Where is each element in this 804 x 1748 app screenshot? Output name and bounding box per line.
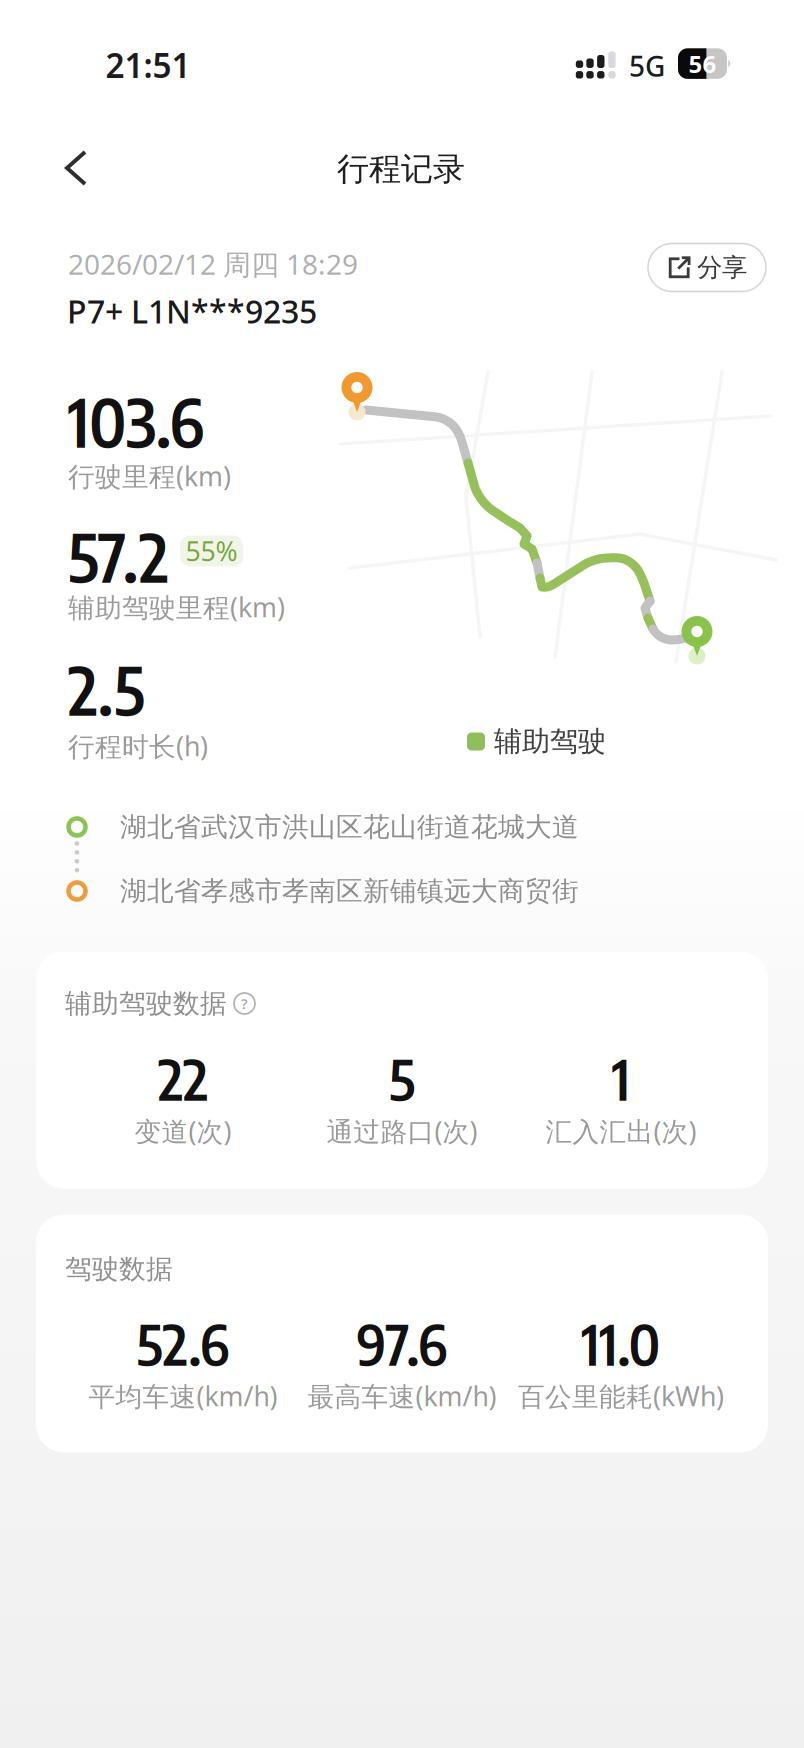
staticText: 行程记录: [337, 149, 465, 189]
staticText: 最高车速(km/h): [307, 1378, 496, 1414]
staticText: 行程时长(h): [68, 728, 208, 764]
staticText: ?: [241, 994, 248, 1013]
staticText: P7+ L1N***9235: [67, 290, 317, 332]
staticText: 57.2: [68, 515, 169, 597]
staticText: 5: [389, 1043, 415, 1113]
staticText: 2026/02/12 周四 18:29: [68, 245, 358, 283]
staticText: 55%: [185, 533, 237, 569]
staticText: 97.6: [356, 1308, 447, 1378]
staticText: 辅助驾驶里程(km): [68, 589, 285, 625]
staticText: 辅助驾驶: [494, 724, 606, 759]
staticText: 湖北省孝感市孝南区新铺镇远大商贸街: [120, 875, 579, 907]
staticText: 22: [158, 1043, 208, 1113]
button[interactable]: 返回: [13, 140, 114, 196]
staticText: 52.6: [136, 1308, 229, 1378]
staticText: 平均车速(km/h): [88, 1378, 277, 1414]
staticText: 百公里能耗(kWh): [518, 1378, 724, 1414]
staticText: 56: [688, 48, 716, 80]
staticText: 辅助驾驶数据: [65, 987, 227, 1020]
staticText: 通过路口(次): [326, 1113, 477, 1149]
button[interactable]: 分享: [648, 243, 766, 291]
staticText: 湖北省武汉市洪山区花山街道花城大道: [120, 811, 579, 843]
staticText: 5G: [629, 47, 665, 85]
staticText: 1: [612, 1043, 630, 1113]
staticText: 驾驶数据: [65, 1253, 173, 1285]
staticText: 行驶里程(km): [68, 458, 231, 494]
button[interactable]: 辅助驾驶数据说明: [234, 993, 255, 1014]
staticText: 分享: [697, 252, 747, 283]
staticText: 变道(次): [134, 1113, 231, 1149]
staticText: 21:51: [105, 43, 190, 87]
staticText: 11.0: [581, 1308, 660, 1378]
staticText: 2.5: [68, 648, 145, 730]
staticText: 103.6: [68, 380, 204, 462]
staticText: 汇入汇出(次): [545, 1113, 696, 1149]
